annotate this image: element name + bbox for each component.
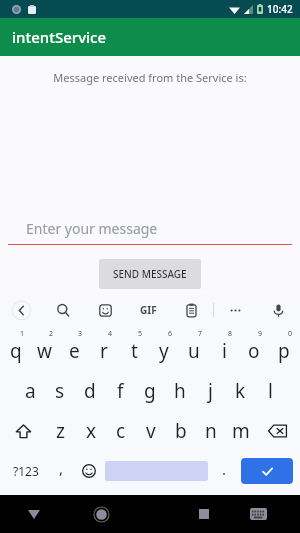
button[interactable]: More options bbox=[214, 295, 257, 325]
button[interactable]: l bbox=[255, 371, 285, 411]
staticText: Message received from the Service is: bbox=[0, 70, 300, 85]
staticText: z bbox=[56, 418, 65, 444]
staticText: 10:42 bbox=[267, 2, 293, 16]
staticText: y bbox=[159, 338, 169, 364]
staticText: p bbox=[278, 338, 290, 364]
button[interactable]: 3 bbox=[59, 325, 89, 371]
staticText: l bbox=[268, 378, 273, 404]
staticText: Enter your message bbox=[26, 219, 158, 238]
button[interactable]: 4 bbox=[89, 325, 119, 371]
staticText: i bbox=[222, 338, 227, 364]
button[interactable]: SEND MESSAGE bbox=[99, 259, 201, 289]
button[interactable]: Home bbox=[67, 495, 135, 533]
staticText: n bbox=[205, 418, 217, 444]
button[interactable]: 8 bbox=[209, 325, 239, 371]
staticText: r bbox=[100, 338, 108, 364]
staticText: . bbox=[222, 459, 227, 479]
button[interactable]: Switch keyboard bbox=[231, 495, 286, 533]
button[interactable]: 7 bbox=[179, 325, 209, 371]
button[interactable]: s bbox=[45, 371, 75, 411]
button[interactable]: Recents bbox=[176, 495, 231, 533]
button[interactable]: a bbox=[15, 371, 45, 411]
staticText: q bbox=[10, 338, 22, 364]
button[interactable]: f bbox=[105, 371, 135, 411]
staticText: t bbox=[131, 338, 138, 364]
button[interactable]: 9 bbox=[239, 325, 269, 371]
button[interactable]: g bbox=[135, 371, 165, 411]
button[interactable]: j bbox=[195, 371, 225, 411]
staticText: 3 bbox=[78, 329, 83, 339]
button[interactable]: d bbox=[75, 371, 105, 411]
staticText: h bbox=[174, 378, 186, 404]
staticText: 7 bbox=[198, 329, 203, 339]
staticText: u bbox=[188, 338, 200, 364]
button[interactable]: v bbox=[136, 411, 166, 451]
staticText: 1 bbox=[20, 329, 25, 339]
button[interactable]: Stickers bbox=[84, 295, 127, 325]
button[interactable]: 2 bbox=[30, 325, 59, 371]
staticText: b bbox=[175, 418, 187, 444]
staticText: g bbox=[144, 378, 156, 404]
staticText: ?123 bbox=[13, 463, 39, 479]
button[interactable]: Backspace bbox=[256, 411, 299, 451]
staticText: e bbox=[69, 338, 80, 364]
button[interactable]: m bbox=[226, 411, 256, 451]
button[interactable]: 1 bbox=[1, 325, 30, 371]
staticText: intentService bbox=[12, 27, 107, 47]
staticText: 9 bbox=[258, 329, 263, 339]
staticText: 5 bbox=[138, 329, 143, 339]
button[interactable]: . bbox=[210, 451, 238, 491]
staticText: 6 bbox=[168, 329, 173, 339]
staticText: 0 bbox=[288, 329, 293, 339]
button[interactable]: Hide keyboard bbox=[0, 495, 67, 533]
staticText: d bbox=[84, 378, 96, 404]
staticText: o bbox=[248, 338, 260, 364]
staticText: SEND MESSAGE bbox=[113, 267, 187, 281]
button[interactable]: Emoji bbox=[75, 451, 103, 491]
button[interactable]: Clipboard bbox=[170, 295, 213, 325]
button[interactable]: 5 bbox=[119, 325, 149, 371]
button[interactable]: z bbox=[45, 411, 76, 451]
button[interactable]: 0 bbox=[269, 325, 299, 371]
button[interactable]: Shift bbox=[1, 411, 45, 451]
button[interactable]: Search bbox=[42, 295, 84, 325]
button[interactable]: Back bbox=[0, 295, 42, 325]
staticText: GIF bbox=[140, 303, 157, 317]
staticText: c bbox=[116, 418, 126, 444]
staticText: 4 bbox=[108, 329, 113, 339]
staticText: v bbox=[146, 418, 156, 444]
staticText: m bbox=[232, 418, 250, 444]
staticText: s bbox=[55, 378, 65, 404]
button[interactable]: Voice input bbox=[257, 295, 300, 325]
staticText: , bbox=[59, 458, 64, 478]
button[interactable]: 6 bbox=[149, 325, 179, 371]
button[interactable]: k bbox=[225, 371, 255, 411]
staticText: w bbox=[37, 338, 52, 364]
staticText: k bbox=[235, 378, 246, 404]
staticText: 8 bbox=[228, 329, 233, 339]
button[interactable]: x bbox=[76, 411, 106, 451]
button[interactable]: h bbox=[165, 371, 195, 411]
staticText: f bbox=[117, 378, 124, 404]
button[interactable]: Enter your message bbox=[8, 219, 292, 245]
button[interactable]: Enter bbox=[241, 458, 293, 484]
staticText: j bbox=[208, 378, 213, 404]
button[interactable]: b bbox=[166, 411, 196, 451]
button[interactable]: GIF bbox=[127, 303, 170, 317]
button[interactable]: n bbox=[196, 411, 226, 451]
staticText: 2 bbox=[49, 329, 54, 339]
button[interactable]: ?123 bbox=[4, 451, 47, 491]
staticText: x bbox=[86, 418, 97, 444]
staticText: a bbox=[25, 378, 36, 404]
button[interactable]: c bbox=[106, 411, 136, 451]
button[interactable]: , bbox=[47, 451, 75, 491]
